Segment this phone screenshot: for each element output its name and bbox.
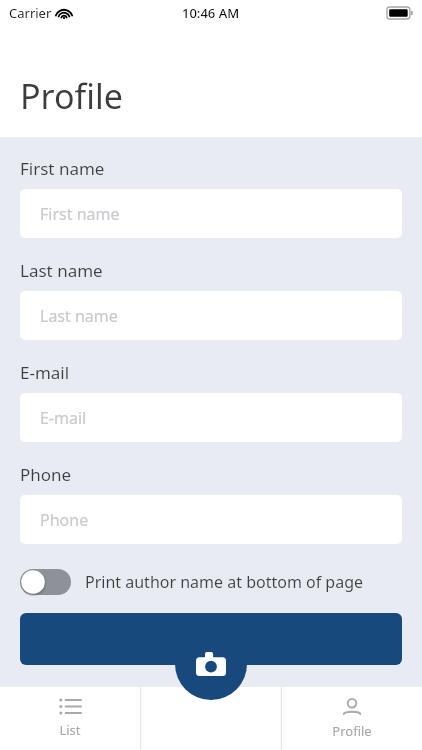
staticText: Carrier	[9, 4, 52, 22]
staticText: Profile	[332, 722, 372, 740]
staticText: Last name	[20, 259, 103, 282]
button[interactable]: Take photo	[175, 628, 247, 700]
staticText: Phone	[20, 463, 72, 486]
staticText: Profile	[20, 73, 123, 119]
staticText: First name	[20, 157, 105, 180]
staticText: Phone	[40, 509, 89, 531]
button[interactable]: Phone	[20, 495, 402, 544]
staticText: E-mail	[20, 361, 70, 384]
staticText: 10:46 AM	[182, 4, 240, 22]
staticText: First name	[40, 203, 120, 225]
staticText: List	[59, 721, 81, 739]
button[interactable]: List	[0, 687, 140, 750]
staticText: E-mail	[40, 407, 87, 429]
button[interactable]: Last name	[20, 291, 402, 340]
staticText: Last name	[40, 305, 118, 327]
button[interactable]	[20, 613, 402, 665]
button[interactable]: Profile	[281, 687, 422, 750]
button[interactable]: First name	[20, 189, 402, 238]
button[interactable]: Print author name at bottom of page	[20, 569, 402, 595]
staticText: Print author name at bottom of page	[85, 571, 364, 593]
button[interactable]: E-mail	[20, 393, 402, 442]
